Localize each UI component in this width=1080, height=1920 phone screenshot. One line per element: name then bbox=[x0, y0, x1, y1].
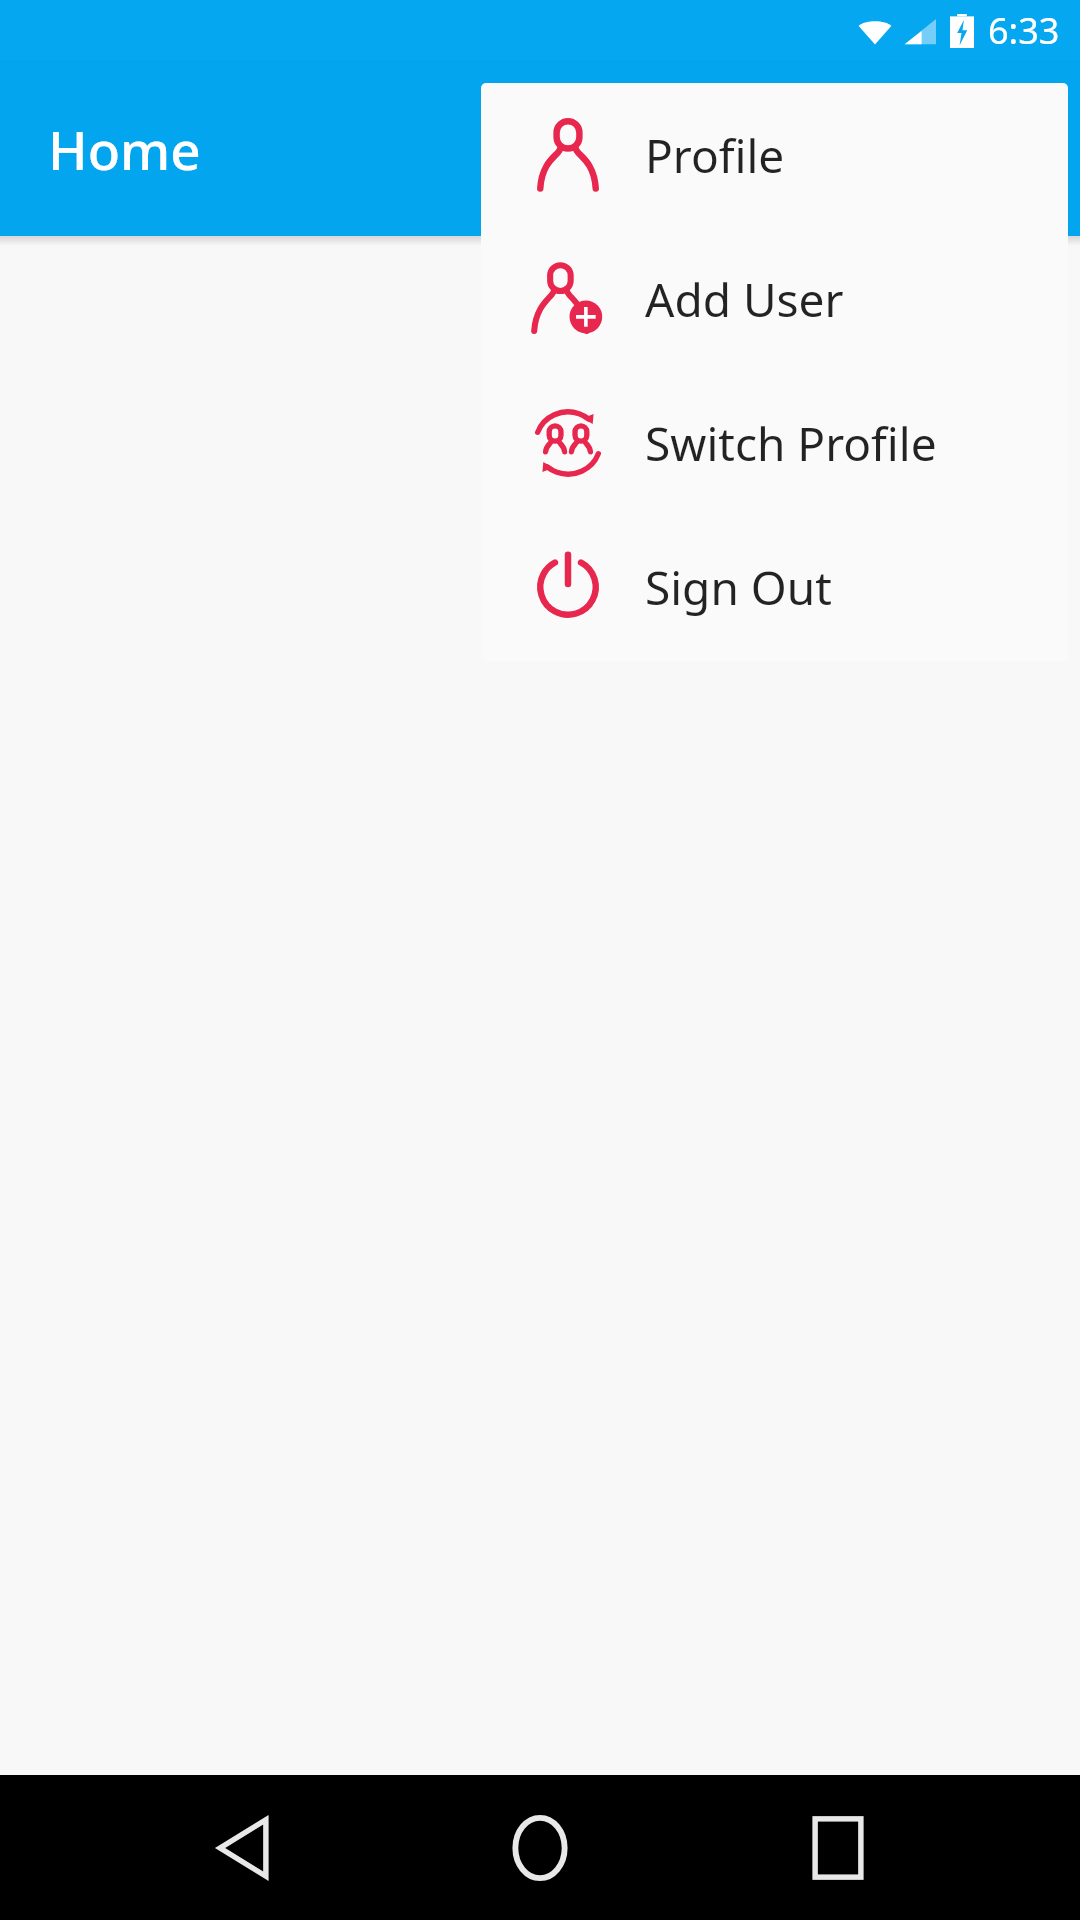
button[interactable]: Home bbox=[485, 1793, 595, 1903]
button[interactable]: Switch Profile bbox=[481, 371, 1068, 515]
staticText: Switch Profile bbox=[645, 412, 937, 475]
staticText: Add User bbox=[645, 268, 844, 331]
staticText: Profile bbox=[645, 124, 785, 187]
staticText: Sign Out bbox=[645, 556, 832, 619]
staticText: Home bbox=[48, 113, 201, 185]
button[interactable]: Add User bbox=[481, 227, 1068, 371]
button[interactable]: Back bbox=[188, 1793, 298, 1903]
button[interactable]: Sign Out bbox=[481, 515, 1068, 659]
button[interactable]: Recent apps bbox=[783, 1793, 893, 1903]
staticText: 6:33 bbox=[988, 6, 1060, 55]
button[interactable]: Profile bbox=[481, 83, 1068, 227]
